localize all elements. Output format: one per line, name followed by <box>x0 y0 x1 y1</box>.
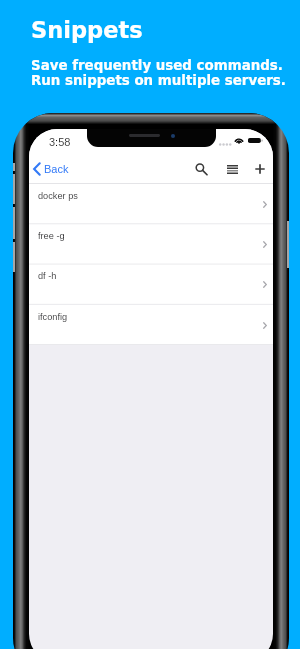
button[interactable]: Add snippet <box>247 156 273 182</box>
staticText: Snippets <box>31 17 143 43</box>
button[interactable]: Search <box>188 156 214 182</box>
staticText: 3:58 <box>49 136 71 148</box>
staticText: docker ps <box>38 191 78 201</box>
staticText: Back <box>44 163 69 175</box>
staticText: free -g <box>38 231 65 241</box>
button[interactable]: ifconfig <box>29 305 273 345</box>
button[interactable]: docker ps <box>29 184 273 224</box>
staticText: ifconfig <box>38 312 68 322</box>
button[interactable]: Back <box>29 157 75 181</box>
button[interactable]: df -h <box>29 264 273 304</box>
button[interactable]: Menu <box>219 156 245 182</box>
button[interactable]: free -g <box>29 224 273 264</box>
staticText: df -h <box>38 271 57 281</box>
staticText: Save frequently used commands. Run snipp… <box>31 58 286 88</box>
